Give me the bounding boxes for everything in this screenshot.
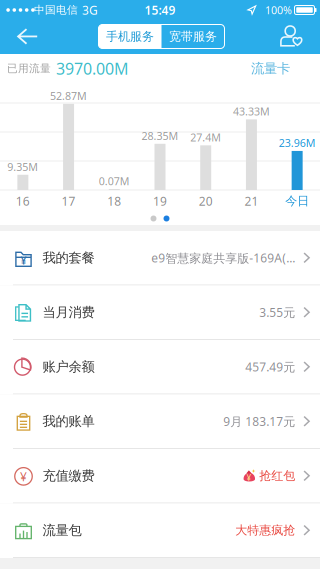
staticText: 流量卡 bbox=[251, 60, 290, 77]
staticText: 100% bbox=[265, 3, 292, 17]
staticText: 23.96M bbox=[279, 136, 316, 150]
staticText: 3G bbox=[82, 2, 98, 18]
staticText: 0.07M bbox=[99, 174, 130, 188]
staticText: 宽带服务 bbox=[169, 29, 217, 44]
staticText: 17 bbox=[62, 193, 76, 209]
staticText: 20 bbox=[199, 193, 213, 209]
button[interactable]: 当月消费 bbox=[0, 285, 320, 340]
staticText: 43.33M bbox=[233, 104, 270, 118]
button[interactable]: 流量卡 bbox=[251, 60, 290, 77]
button[interactable]: 我的账单 bbox=[0, 394, 320, 449]
staticText: 大特惠疯抢 bbox=[235, 523, 295, 538]
staticText: 21 bbox=[244, 193, 258, 209]
button[interactable]: 账户余额 bbox=[0, 340, 320, 394]
staticText: 流量包 bbox=[42, 522, 81, 538]
staticText: ¥ bbox=[20, 253, 26, 267]
staticText: 3.55元 bbox=[259, 304, 295, 320]
staticText: 账户余额 bbox=[42, 359, 94, 375]
staticText: 抢红包 bbox=[259, 468, 295, 483]
button[interactable]: 宽带服务 bbox=[161, 24, 224, 48]
button[interactable]: Back bbox=[7, 18, 48, 55]
staticText: 手机服务 bbox=[106, 29, 154, 44]
staticText: 457.49元 bbox=[245, 359, 295, 375]
staticText: 中国电信 bbox=[34, 3, 78, 16]
staticText: ¥ bbox=[246, 472, 251, 483]
staticText: 19 bbox=[153, 193, 167, 209]
staticText: 52.87M bbox=[50, 89, 87, 103]
staticText: 16 bbox=[16, 193, 30, 209]
staticText: 已用流量 bbox=[7, 62, 51, 75]
staticText: e9智慧家庭共享版-169A(... bbox=[151, 250, 295, 266]
staticText: 我的账单 bbox=[42, 413, 94, 429]
button[interactable]: 流量包 bbox=[0, 503, 320, 558]
button[interactable]: ¥ bbox=[0, 449, 320, 503]
staticText: 15:49 bbox=[144, 2, 175, 18]
staticText: 今日 bbox=[285, 194, 309, 208]
staticText: 当月消费 bbox=[42, 304, 94, 320]
staticText: 我的套餐 bbox=[42, 250, 94, 266]
button[interactable]: 手机服务 bbox=[98, 24, 161, 48]
staticText: 9月 183.17元 bbox=[223, 413, 295, 429]
staticText: 充值缴费 bbox=[42, 468, 94, 484]
staticText: 9.35M bbox=[7, 160, 38, 174]
button[interactable]: Account bbox=[274, 19, 309, 52]
staticText: 27.4M bbox=[190, 130, 221, 144]
staticText: 3970.00M bbox=[56, 58, 129, 79]
staticText: ¥ bbox=[20, 469, 27, 484]
button[interactable]: ¥ bbox=[0, 231, 320, 285]
staticText: 18 bbox=[107, 193, 121, 209]
staticText: 28.35M bbox=[141, 129, 178, 143]
